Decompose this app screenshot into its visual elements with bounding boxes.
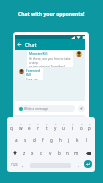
staticText: m <box>74 150 79 156</box>
button[interactable]: b <box>55 147 64 159</box>
button[interactable]: c <box>37 147 46 159</box>
staticText: 8 <box>72 122 74 125</box>
staticText: ForestedKill <box>26 69 42 77</box>
button[interactable]: . <box>75 160 83 170</box>
staticText: 9 <box>81 122 83 125</box>
other: Back <box>17 42 22 47</box>
button[interactable]: g <box>47 134 56 146</box>
button[interactable]: 1 <box>7 120 16 132</box>
staticText: Chat <box>25 41 37 48</box>
staticText: i <box>72 125 74 131</box>
button[interactable]: Back <box>15 39 85 50</box>
button[interactable]: 9 <box>77 120 86 132</box>
button[interactable]: ForestedKill <box>25 68 43 80</box>
staticText: v <box>49 150 52 156</box>
button[interactable]: 6 <box>51 120 60 132</box>
staticText: 1 <box>11 122 13 125</box>
staticText: 2 <box>20 122 22 125</box>
staticText: j <box>68 137 70 143</box>
staticText: k <box>76 137 79 143</box>
button[interactable]: x <box>28 147 37 159</box>
staticText: x <box>31 150 34 156</box>
staticText: l <box>86 137 88 143</box>
staticText: t <box>46 125 48 131</box>
staticText: o <box>80 125 83 131</box>
staticText: p <box>88 125 91 131</box>
button[interactable]: v <box>46 147 55 159</box>
button[interactable]: a <box>12 134 21 146</box>
button[interactable]: s <box>21 134 30 146</box>
staticText: f <box>42 137 44 143</box>
staticText: r <box>37 125 39 131</box>
staticText: w <box>19 125 23 131</box>
staticText: MonsterKill <box>29 52 48 56</box>
button[interactable]: 4 <box>33 120 42 132</box>
staticText: 3 <box>29 122 31 125</box>
staticText: c <box>40 150 43 156</box>
button[interactable]: j <box>64 134 73 146</box>
staticText: or two playing Together? <box>29 65 66 67</box>
staticText: d <box>33 137 36 143</box>
staticText: ?123 <box>11 163 18 167</box>
button[interactable]: n <box>63 147 72 159</box>
button[interactable]: z <box>20 147 29 159</box>
button[interactable]: 8 <box>68 120 77 132</box>
staticText: a <box>15 137 18 143</box>
button[interactable]: m <box>72 147 81 159</box>
staticText: 4 <box>37 122 39 125</box>
button[interactable]: Write a message <box>18 105 75 112</box>
button[interactable]: 7 <box>59 120 68 132</box>
staticText: u <box>62 125 65 131</box>
staticText: 0 <box>89 122 91 125</box>
staticText: 6 <box>55 122 57 125</box>
staticText: Write a message <box>24 107 49 111</box>
staticText: , <box>22 162 24 168</box>
button[interactable]: Shift <box>11 149 19 157</box>
staticText: b <box>58 150 61 156</box>
staticText: 7 <box>63 122 65 125</box>
staticText: Chat with your opponents! <box>18 11 85 18</box>
staticText: Sure, go ahd! <box>26 78 42 80</box>
button[interactable]: , <box>19 160 27 170</box>
staticText: q <box>10 125 13 131</box>
staticText: . <box>78 162 80 168</box>
button[interactable]: Backspace <box>84 149 92 157</box>
button[interactable]: Enter <box>84 160 92 168</box>
button[interactable]: 5 <box>42 120 51 132</box>
staticText: e <box>28 125 31 131</box>
button[interactable]: h <box>56 134 65 146</box>
staticText: y <box>54 125 57 131</box>
button[interactable]: 0 <box>85 120 94 132</box>
button[interactable]: MonsterKill <box>27 51 73 67</box>
button[interactable]: d <box>30 134 39 146</box>
button[interactable]: 2 <box>16 120 25 132</box>
button[interactable]: Send <box>78 105 85 112</box>
button[interactable]: l <box>82 134 91 146</box>
button[interactable]: k <box>73 134 82 146</box>
staticText: s <box>24 137 27 143</box>
staticText: z <box>23 150 26 156</box>
staticText: h <box>59 137 62 143</box>
button[interactable]: ?123 <box>10 160 18 170</box>
button[interactable]: f <box>38 134 47 146</box>
staticText: Hi there, are you free to take a step <box>29 57 72 65</box>
staticText: g <box>50 137 53 143</box>
staticText: n <box>66 150 69 156</box>
button[interactable]: 3 <box>25 120 34 132</box>
staticText: 5 <box>46 122 48 125</box>
